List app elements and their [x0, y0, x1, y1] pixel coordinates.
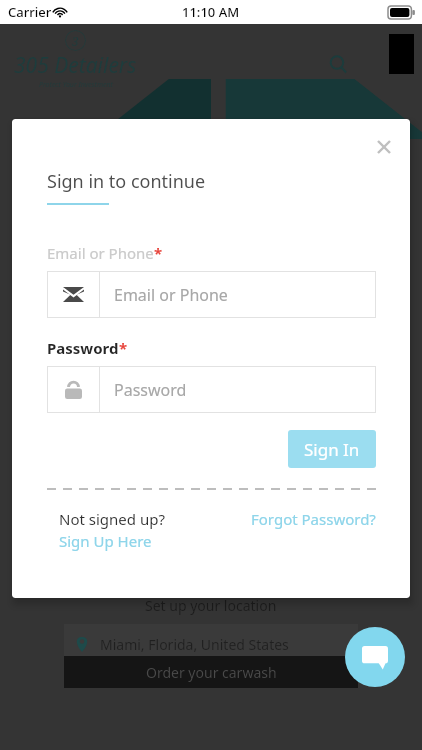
staticText: Password — [47, 338, 119, 358]
button[interactable]: Order your carwash — [64, 656, 358, 688]
button[interactable]: Miami, Florida, United States — [64, 624, 358, 664]
staticText: Miami, Florida, United States — [100, 635, 289, 654]
staticText: 11:10 AM — [182, 3, 240, 21]
staticText: Protect Your Investment — [39, 80, 113, 90]
button[interactable]: Password — [47, 366, 376, 413]
staticText: Order your carwash — [146, 663, 277, 682]
staticText: Password — [114, 379, 187, 401]
staticText: Sign In — [304, 438, 360, 461]
button[interactable]: Sign Up Here — [59, 531, 152, 551]
staticText: Carrier — [8, 3, 52, 21]
staticText: Sign in to continue — [47, 169, 206, 194]
button[interactable]: Email or Phone — [47, 271, 376, 318]
staticText: Not signed up? — [59, 509, 165, 529]
staticText: * — [119, 338, 128, 358]
staticText: Email or Phone — [47, 243, 154, 263]
staticText: Email or Phone — [114, 284, 228, 306]
staticText: Forgot Password? — [251, 509, 376, 529]
button[interactable]: Sign In — [288, 430, 376, 468]
button[interactable]: Search — [320, 46, 356, 82]
staticText: 3 — [72, 33, 79, 49]
button[interactable]: Forgot Password? — [251, 509, 376, 529]
staticText: 305 Detailers — [14, 51, 137, 80]
staticText: Set up your location — [145, 596, 277, 615]
button[interactable]: Chat — [345, 627, 405, 687]
button[interactable]: Close — [368, 131, 400, 163]
staticText: * — [154, 243, 163, 263]
staticText: Sign Up Here — [59, 531, 152, 551]
